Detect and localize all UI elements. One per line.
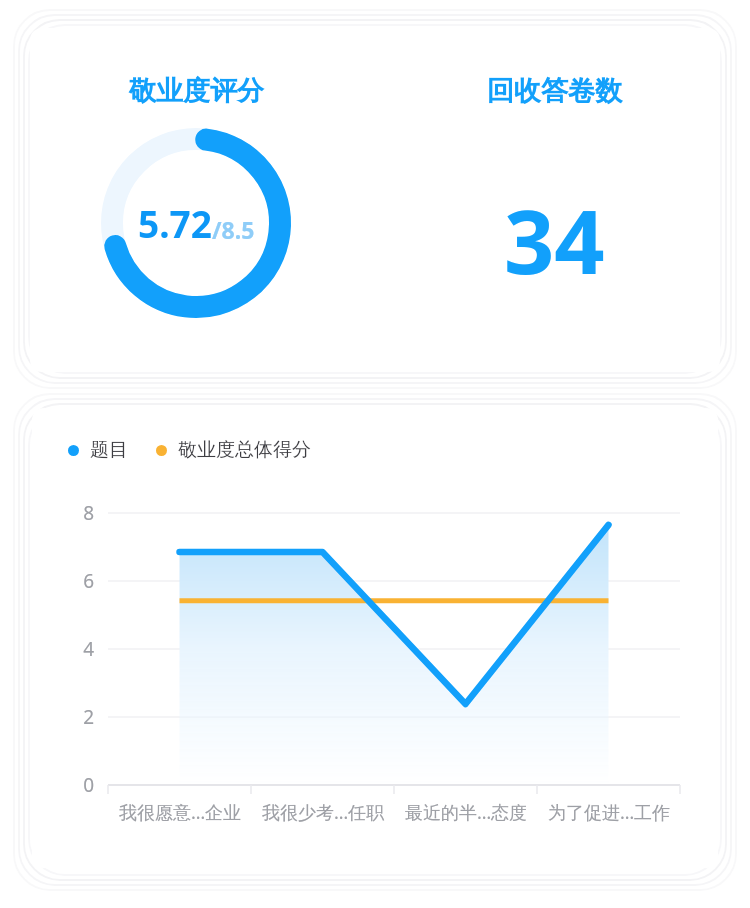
- staticText: 6: [66, 568, 94, 594]
- button[interactable]: 回收答卷数: [388, 28, 720, 372]
- staticText: 34: [504, 180, 605, 300]
- staticText: 8: [66, 500, 94, 526]
- staticText: 2: [66, 704, 94, 730]
- button[interactable]: 题目: [32, 408, 718, 868]
- staticText: 题目: [90, 438, 128, 462]
- staticText: /8.5: [212, 214, 255, 245]
- staticText: 回收答卷数: [487, 74, 622, 108]
- staticText: 敬业度评分: [129, 74, 264, 108]
- staticText: 为了促进…工作: [531, 800, 687, 825]
- staticText: 5.72: [138, 198, 212, 248]
- staticText: 最近的半…态度: [388, 800, 544, 825]
- staticText: 我很少考…任职: [245, 800, 401, 825]
- staticText: 0: [66, 772, 94, 798]
- staticText: 4: [66, 636, 94, 662]
- button[interactable]: 敬业度评分: [30, 28, 362, 372]
- staticText: 敬业度总体得分: [178, 438, 311, 462]
- staticText: 我很愿意…企业: [102, 800, 258, 825]
